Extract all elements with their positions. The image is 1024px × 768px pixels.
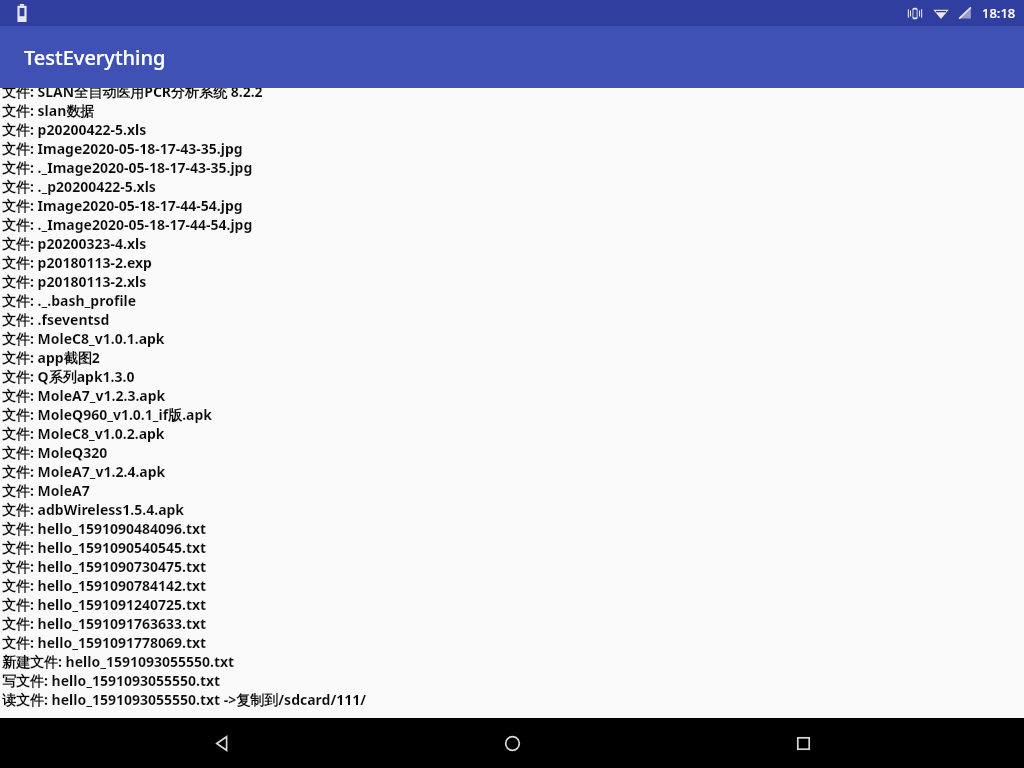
staticText: 文件: p20180113-2.exp (2, 253, 1024, 272)
staticText: 文件: p20180113-2.xls (2, 272, 1024, 291)
staticText: 文件: MoleQ320 (2, 443, 1024, 462)
staticText: 文件: ._.bash_profile (2, 291, 1024, 310)
staticText: 写文件: hello_1591093055550.txt (2, 671, 1024, 690)
staticText: 文件: p20200422-5.xls (2, 120, 1024, 139)
staticText: 读文件: hello_1591093055550.txt ->复制到/sdcar… (2, 690, 1024, 709)
staticText: 文件: hello_1591091778069.txt (2, 633, 1024, 652)
staticText: 文件: hello_1591091240725.txt (2, 595, 1024, 614)
staticText: 文件: hello_1591090784142.txt (2, 576, 1024, 595)
staticText: 文件: Image2020-05-18-17-44-54.jpg (2, 196, 1024, 215)
staticText: 文件: app截图2 (2, 348, 1024, 367)
staticText: 文件: MoleA7_v1.2.4.apk (2, 462, 1024, 481)
staticText: 文件: adbWireless1.5.4.apk (2, 500, 1024, 519)
staticText: 文件: p20200323-4.xls (2, 234, 1024, 253)
staticText: 文件: .fseventsd (2, 310, 1024, 329)
button[interactable]: Recent apps (733, 718, 873, 768)
staticText: 文件: MoleQ960_v1.0.1_if版.apk (2, 405, 1024, 424)
staticText: 文件: MoleC8_v1.0.1.apk (2, 329, 1024, 348)
staticText: 文件: ._Image2020-05-18-17-44-54.jpg (2, 215, 1024, 234)
staticText: 文件: slan数据 (2, 101, 1024, 120)
staticText: 文件: Q系列apk1.3.0 (2, 367, 1024, 386)
staticText: 文件: MoleC8_v1.0.2.apk (2, 424, 1024, 443)
button[interactable]: Back (151, 718, 291, 768)
staticText: 文件: ._Image2020-05-18-17-43-35.jpg (2, 158, 1024, 177)
staticText: 18:18 (982, 4, 1016, 22)
button[interactable]: TestEverything (0, 26, 1024, 88)
staticText: 文件: MoleA7_v1.2.3.apk (2, 386, 1024, 405)
button[interactable]: Home (442, 718, 582, 768)
staticText: 新建文件: hello_1591093055550.txt (2, 652, 1024, 671)
button[interactable]: 文件: SLAN全自动医用PCR分析系统 8.2.2 (0, 88, 1024, 709)
staticText: TestEverything (24, 44, 166, 71)
staticText: 文件: ._p20200422-5.xls (2, 177, 1024, 196)
staticText: 文件: Image2020-05-18-17-43-35.jpg (2, 139, 1024, 158)
staticText: 文件: hello_1591091763633.txt (2, 614, 1024, 633)
staticText: 文件: MoleA7 (2, 481, 1024, 500)
staticText: 文件: hello_1591090540545.txt (2, 538, 1024, 557)
staticText: 文件: SLAN全自动医用PCR分析系统 8.2.2 (2, 88, 1024, 101)
staticText: 文件: hello_1591090484096.txt (2, 519, 1024, 538)
staticText: 文件: hello_1591090730475.txt (2, 557, 1024, 576)
